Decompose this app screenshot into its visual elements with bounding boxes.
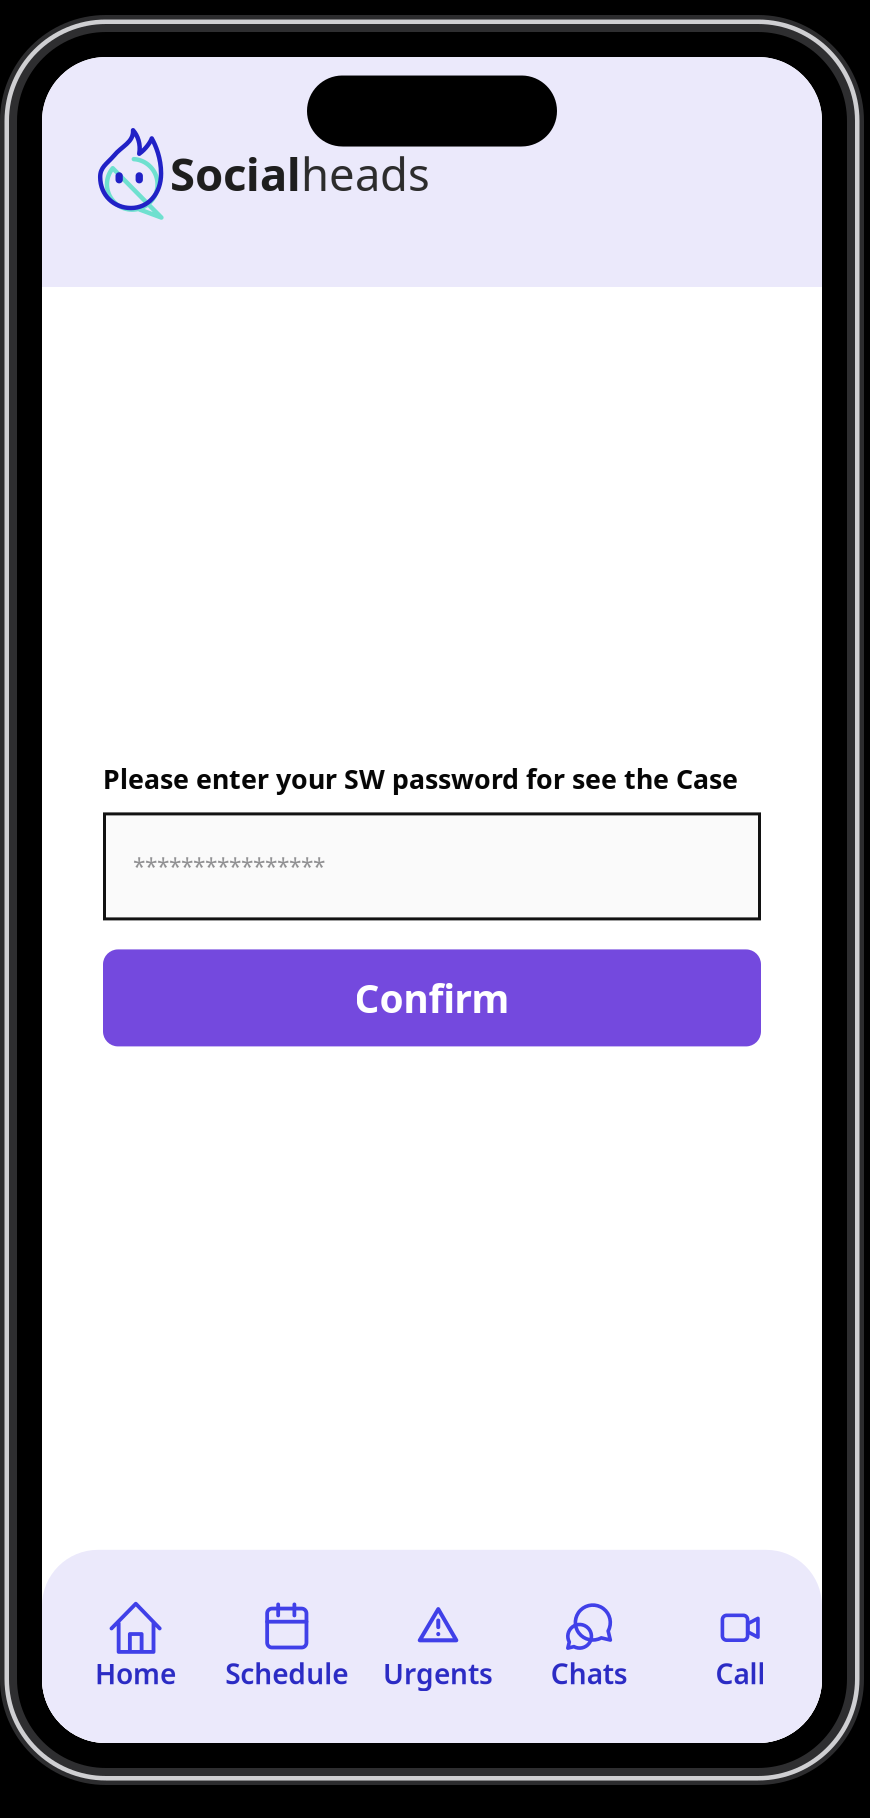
button[interactable]: Urgents	[362, 1602, 514, 1692]
button[interactable]: Home	[60, 1602, 211, 1692]
button[interactable]: Chats	[514, 1602, 665, 1692]
staticText: Urgents	[383, 1655, 493, 1692]
staticText: Chats	[551, 1655, 628, 1692]
staticText: Social	[170, 143, 301, 204]
staticText: Home	[95, 1655, 176, 1692]
button[interactable]: Schedule	[211, 1602, 362, 1692]
staticText: Confirm	[354, 972, 509, 1023]
staticText: Please enter your SW password for see th…	[103, 761, 738, 796]
staticText: Call	[715, 1655, 765, 1692]
button[interactable]: Call	[665, 1602, 816, 1692]
button[interactable]: Confirm	[103, 949, 761, 1046]
staticText: Schedule	[225, 1655, 348, 1692]
staticText: heads	[301, 143, 430, 204]
staticText: ****************	[133, 851, 325, 881]
